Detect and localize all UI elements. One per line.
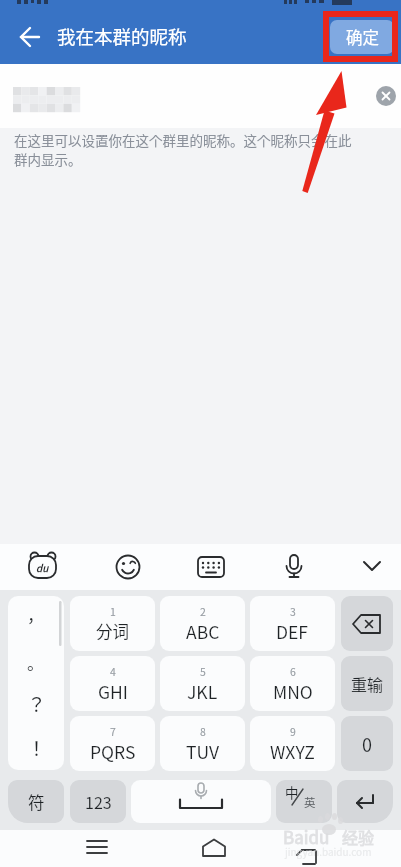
staticText: WXYZ <box>270 739 315 764</box>
staticText: 确定 <box>346 25 379 49</box>
button[interactable]: 确定 <box>330 20 394 54</box>
staticText: ！ <box>27 734 47 762</box>
button[interactable]: 5 <box>160 656 245 711</box>
staticText: 6 <box>290 664 296 679</box>
button[interactable] <box>12 22 48 52</box>
button[interactable]: 符 <box>8 780 64 823</box>
staticText: 我在本群的昵称 <box>57 23 187 50</box>
button[interactable]: 9 <box>250 716 335 771</box>
staticText: 中 <box>285 782 299 802</box>
button[interactable]: 中 <box>276 780 332 823</box>
staticText: 经验 <box>342 825 375 848</box>
staticText: 123 <box>85 790 112 813</box>
staticText: 符 <box>28 790 45 814</box>
button[interactable]: 2 <box>160 596 245 651</box>
button[interactable]: 1 <box>70 596 155 651</box>
button[interactable] <box>0 64 401 128</box>
staticText: 9 <box>290 724 296 739</box>
button[interactable]: 4 <box>70 656 155 711</box>
button[interactable]: 6 <box>250 656 335 711</box>
staticText: 8 <box>200 724 206 739</box>
staticText: 在这里可以设置你在这个群里的昵称。这个昵称只会在此 <box>14 130 352 150</box>
staticText: 2 <box>200 604 206 619</box>
staticText: du <box>36 560 49 574</box>
staticText: 重输 <box>351 672 384 695</box>
staticText: DEF <box>276 619 309 644</box>
staticText: ABC <box>186 619 220 644</box>
button[interactable] <box>337 780 393 823</box>
button[interactable] <box>376 86 396 106</box>
button[interactable] <box>341 596 393 651</box>
staticText: TUV <box>186 739 220 764</box>
button[interactable]: 7 <box>70 716 155 771</box>
button[interactable]: 123 <box>70 780 126 823</box>
staticText: 分词 <box>96 619 129 643</box>
button[interactable] <box>131 780 271 823</box>
staticText: PQRS <box>90 739 136 764</box>
staticText: 5 <box>200 664 206 679</box>
staticText: 。 <box>27 650 44 675</box>
staticText: MNO <box>273 679 313 704</box>
button[interactable] <box>8 596 64 770</box>
staticText: Baidu <box>283 824 330 849</box>
staticText: 7 <box>110 724 116 739</box>
button[interactable]: 重输 <box>341 656 393 711</box>
staticText: 3 <box>290 604 296 619</box>
button[interactable]: 3 <box>250 596 335 651</box>
staticText: 1 <box>110 604 116 619</box>
staticText: ？ <box>27 690 47 718</box>
staticText: 英 <box>304 794 316 811</box>
staticText: 群内显示。 <box>14 149 82 169</box>
staticText: 4 <box>110 664 116 679</box>
staticText: ， <box>27 602 44 627</box>
staticText: JKL <box>187 679 218 704</box>
button[interactable]: 8 <box>160 716 245 771</box>
staticText: 0 <box>362 731 372 757</box>
button[interactable] <box>8 548 76 586</box>
button[interactable]: 0 <box>341 716 393 771</box>
staticText: GHI <box>98 679 128 704</box>
staticText: jingyan.baidu.com <box>285 844 372 858</box>
